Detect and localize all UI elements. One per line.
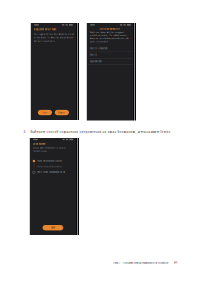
staticText: Don't show notifications at all [37,171,64,173]
staticText: Unlock selection [99,27,120,30]
staticText: Choose which notifications to show on [33,147,66,149]
staticText: Later [42,111,47,114]
button[interactable]: Passcode only [87,58,133,65]
button[interactable]: Face ID + Passcode [87,46,133,52]
staticText: Register [58,111,65,114]
staticText: Show previews only when unlocked [37,166,62,168]
staticText: with any trusted party. [34,40,56,42]
staticText: Глава 7 · Настройка конфиденциальности н… [113,261,168,264]
staticText: option, as password. [90,40,109,43]
button[interactable]: Later [38,110,52,115]
staticText: 3. [23,130,26,134]
staticText: on this device. It will not be shared di… [34,36,73,39]
staticText: Done [51,227,55,229]
staticText: please set up a backup passcode your onl… [90,37,129,39]
staticText: method you prefer. For added security, [90,34,128,36]
staticText: Face ID [90,54,97,56]
staticText: the lock screen. [33,150,48,152]
staticText: Lock screen [33,142,46,145]
button[interactable]: Don't show notifications at all [33,170,75,174]
staticText: Face ID + Passcode [90,47,108,50]
button[interactable]: Register [55,110,69,115]
staticText: Your registered face data will only be s… [34,33,74,35]
staticText: Register your face [34,28,56,31]
staticText: Unlock your device with the recognition [90,31,124,33]
staticText: Выберите способ сохранения уведомлений н… [30,130,171,134]
button[interactable]: Show all notification content [33,159,75,163]
button[interactable]: Face ID [87,52,133,58]
staticText: Show all notification content [37,160,62,162]
button[interactable]: Done [43,225,63,230]
staticText: Passcode only [90,60,102,63]
staticText: 91 [174,261,177,264]
button[interactable]: Show previews only when unlocked [33,165,75,168]
